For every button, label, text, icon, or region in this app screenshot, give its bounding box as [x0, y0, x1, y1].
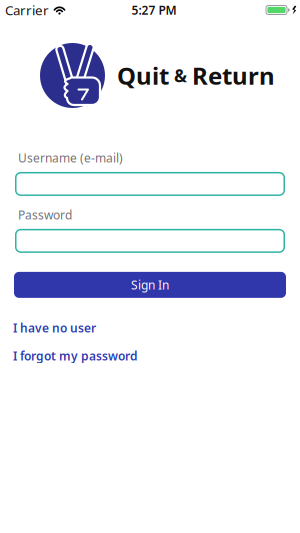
staticText: Carrier: [5, 1, 49, 19]
staticText: Sign In: [131, 277, 169, 293]
staticText: &: [174, 64, 187, 87]
staticText: I have no user: [13, 320, 96, 336]
staticText: Return: [192, 60, 275, 91]
staticText: I forgot my password: [13, 348, 138, 364]
staticText: 5:27 PM: [131, 2, 176, 18]
button[interactable]: I forgot my password: [13, 348, 138, 364]
button[interactable]: [15, 172, 285, 196]
staticText: Password: [18, 207, 72, 223]
staticText: Username (e-mail): [18, 150, 123, 166]
button[interactable]: I have no user: [13, 320, 96, 336]
button[interactable]: [15, 229, 285, 253]
staticText: Quit: [117, 60, 169, 91]
button[interactable]: Sign In: [14, 272, 286, 298]
